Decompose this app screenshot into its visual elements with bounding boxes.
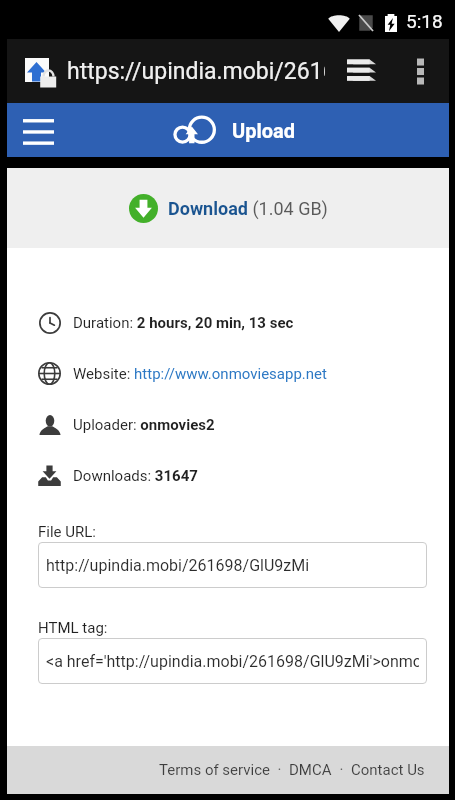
button[interactable]: DMCA	[289, 761, 332, 779]
staticText: Upload	[232, 119, 296, 142]
staticText: http://upindia.mobi/261698/GlU9zMi	[46, 556, 310, 575]
staticText: Duration: 2 hours, 20 min, 13 sec	[73, 314, 294, 332]
button[interactable]: Menu	[15, 107, 61, 153]
staticText: 5:18	[406, 10, 443, 32]
button[interactable]: Terms of service	[159, 761, 270, 779]
staticText: Download (1.04 GB)	[168, 198, 328, 219]
button[interactable]: More options	[398, 49, 442, 93]
button[interactable]: Download (1.04 GB)	[7, 168, 449, 248]
button[interactable]: Contact Us	[351, 761, 425, 779]
staticText: Website: http://www.onmoviesapp.net	[73, 365, 327, 383]
staticText: https://upindia.mobi/2616	[67, 58, 325, 85]
staticText: File URL:	[38, 523, 96, 541]
staticText: ·	[332, 761, 351, 779]
staticText: HTML tag:	[38, 619, 108, 637]
staticText: Uploader: onmovies2	[73, 416, 215, 434]
staticText: <a href='http://upindia.mobi/261698/GlU9…	[46, 652, 419, 671]
staticText: ·	[270, 761, 289, 779]
button[interactable]: Tabs	[339, 49, 383, 93]
staticText: Downloads: 31647	[73, 467, 198, 485]
